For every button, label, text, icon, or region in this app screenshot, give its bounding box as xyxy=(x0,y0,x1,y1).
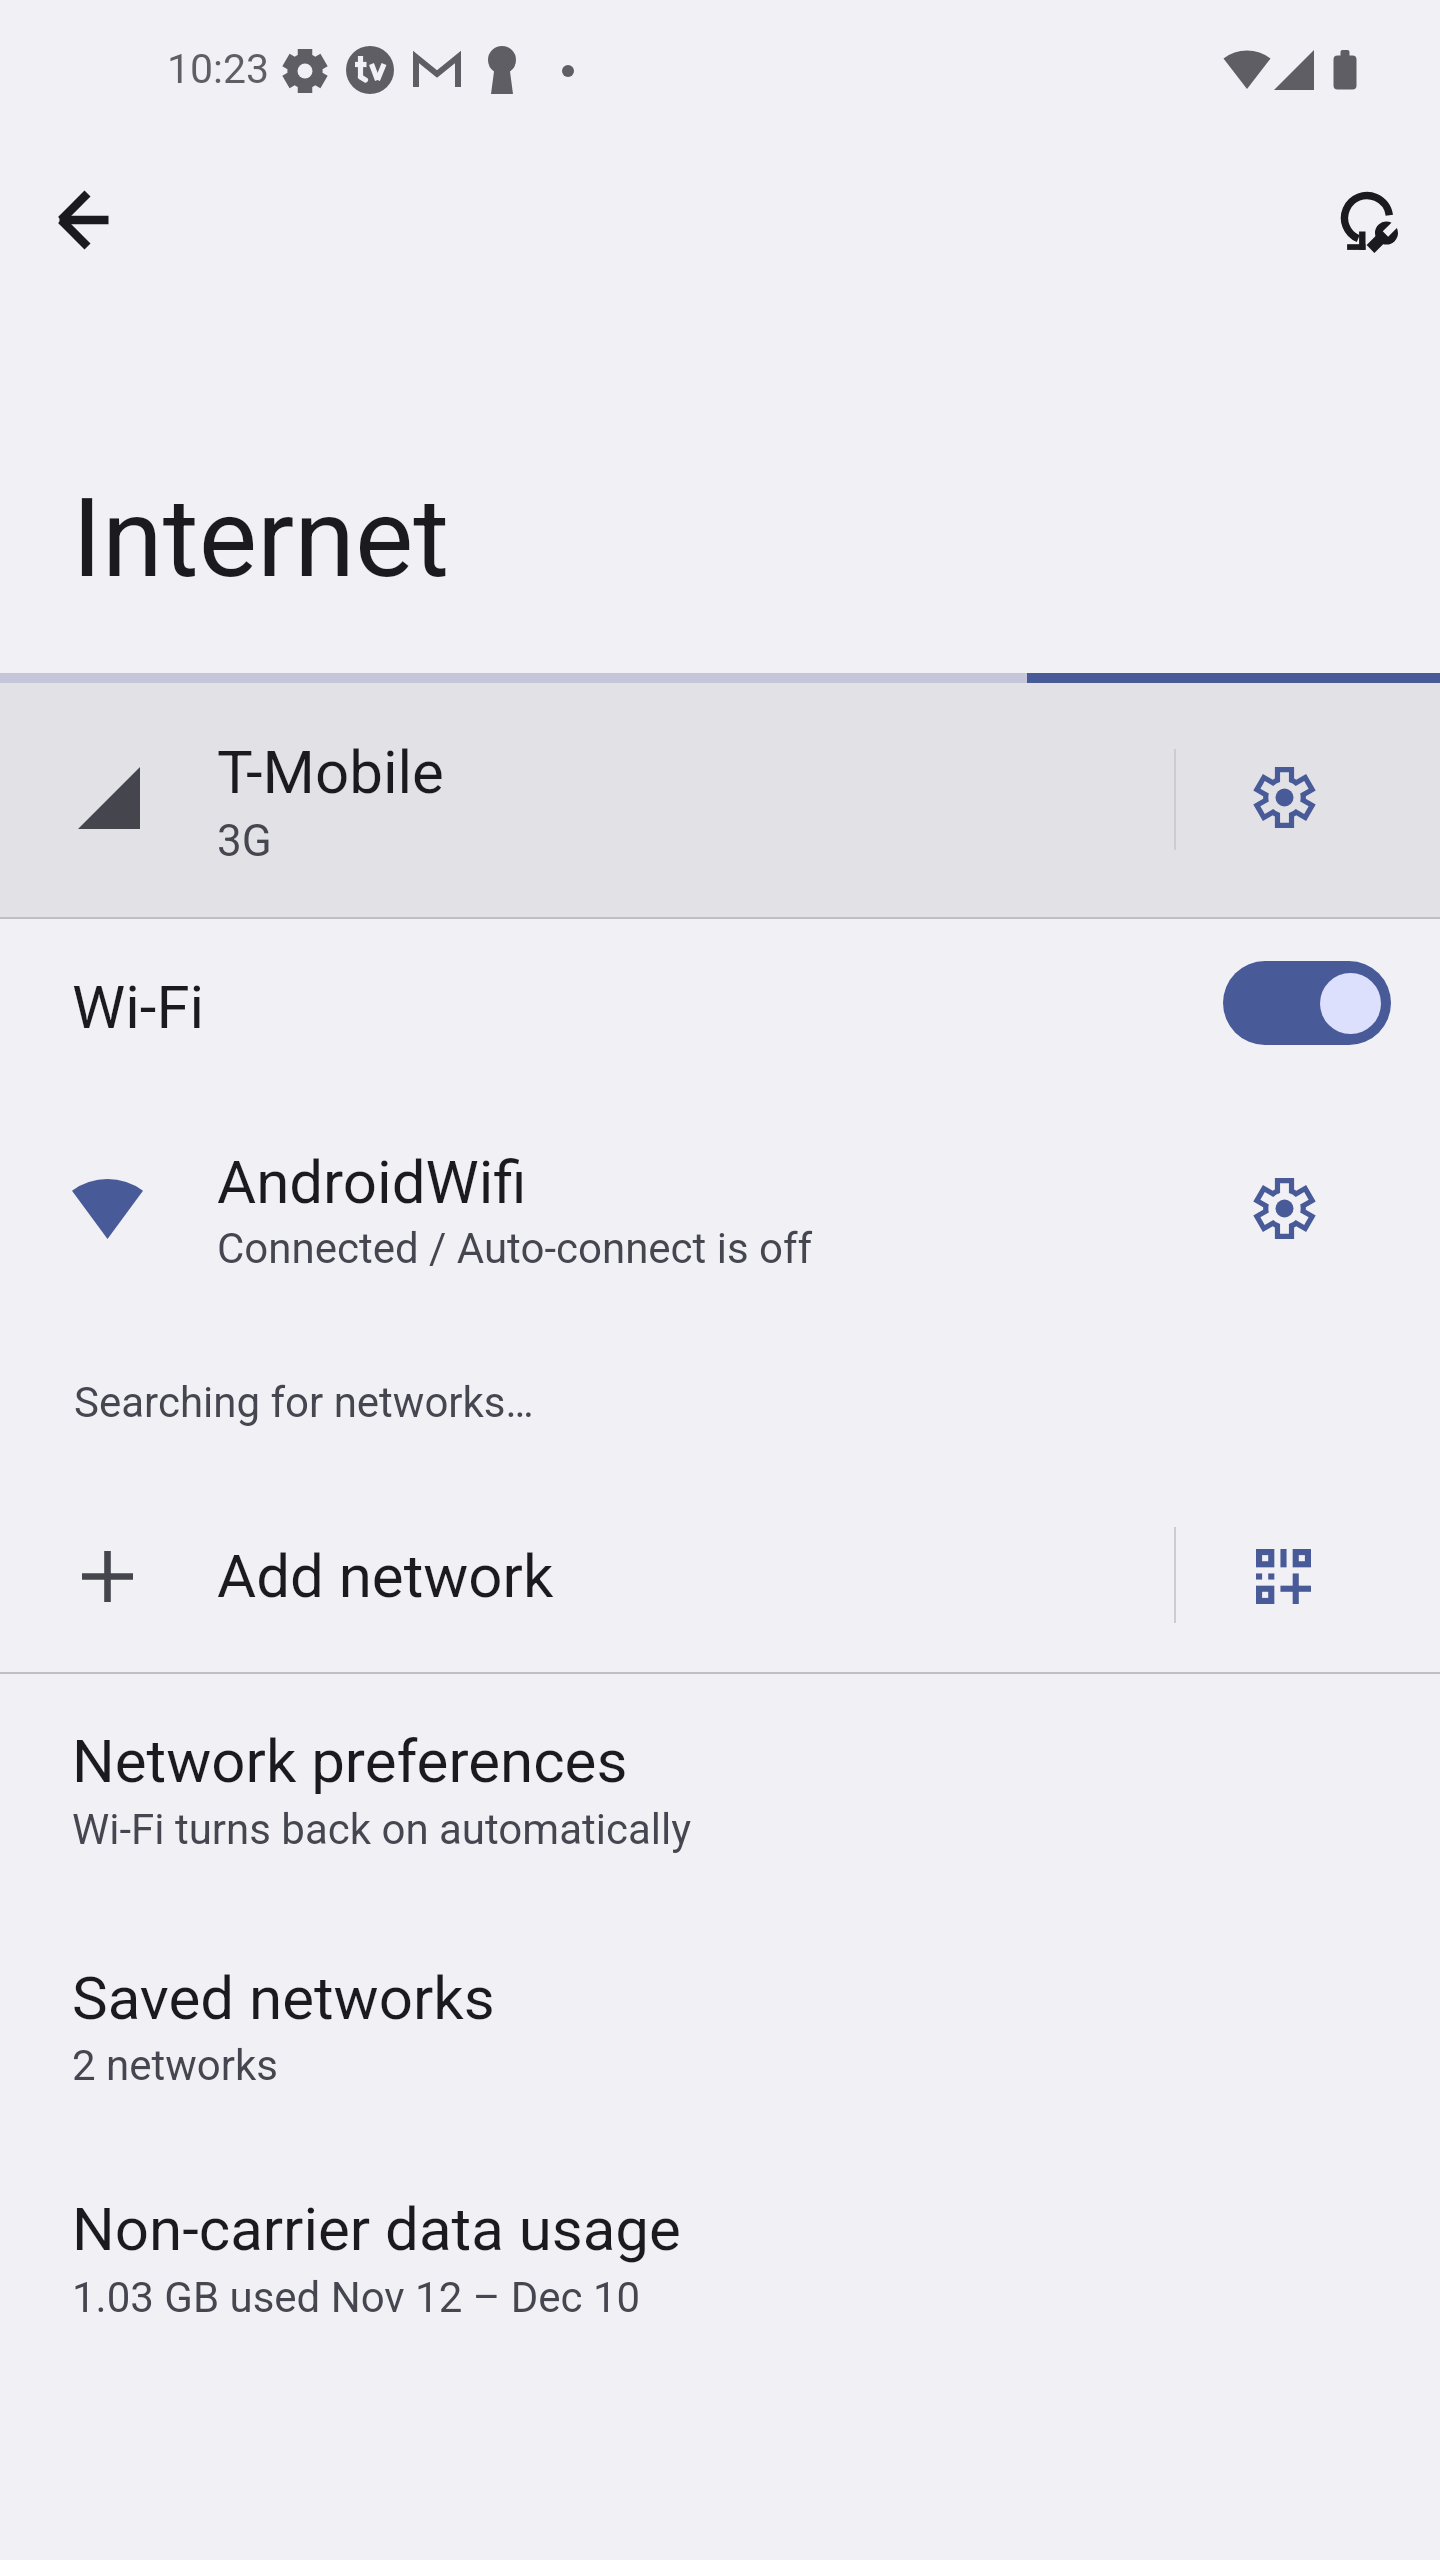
button[interactable] xyxy=(0,1484,1440,1672)
staticText: 3G xyxy=(217,815,272,867)
staticText: AndroidWifi xyxy=(217,1147,527,1217)
staticText: Searching for networks… xyxy=(74,1378,534,1427)
staticText: Internet xyxy=(72,474,450,603)
button[interactable]: Navigate up xyxy=(28,164,140,276)
staticText: Saved networks xyxy=(72,1963,495,2033)
button[interactable] xyxy=(0,1911,1440,2145)
button[interactable]: Carrier settings xyxy=(1194,683,1374,917)
button[interactable]: Scan QR code to add network xyxy=(1194,1484,1374,1672)
staticText: Wi-Fi xyxy=(72,972,205,1042)
staticText: 10:23 xyxy=(167,45,270,93)
staticText: Add network xyxy=(217,1541,554,1611)
button[interactable] xyxy=(0,1090,1440,1305)
button[interactable] xyxy=(0,683,1440,917)
button[interactable]: Network details xyxy=(1194,1090,1374,1305)
staticText: 2 networks xyxy=(72,2041,278,2090)
staticText: 1.03 GB used Nov 12 – Dec 10 xyxy=(72,2273,641,2322)
staticText: Network preferences xyxy=(72,1726,628,1796)
staticText: Connected / Auto-connect is off xyxy=(217,1224,813,1273)
button[interactable]: Reset connectivity xyxy=(1314,164,1426,276)
button[interactable]: Wi-Fi on xyxy=(1223,961,1391,1045)
button[interactable] xyxy=(0,1674,1440,1908)
staticText: T-Mobile xyxy=(217,737,444,807)
button[interactable] xyxy=(0,919,1440,1087)
button[interactable] xyxy=(0,2142,1440,2376)
staticText: Wi-Fi turns back on automatically xyxy=(72,1805,692,1854)
staticText: Non-carrier data usage xyxy=(72,2194,681,2264)
